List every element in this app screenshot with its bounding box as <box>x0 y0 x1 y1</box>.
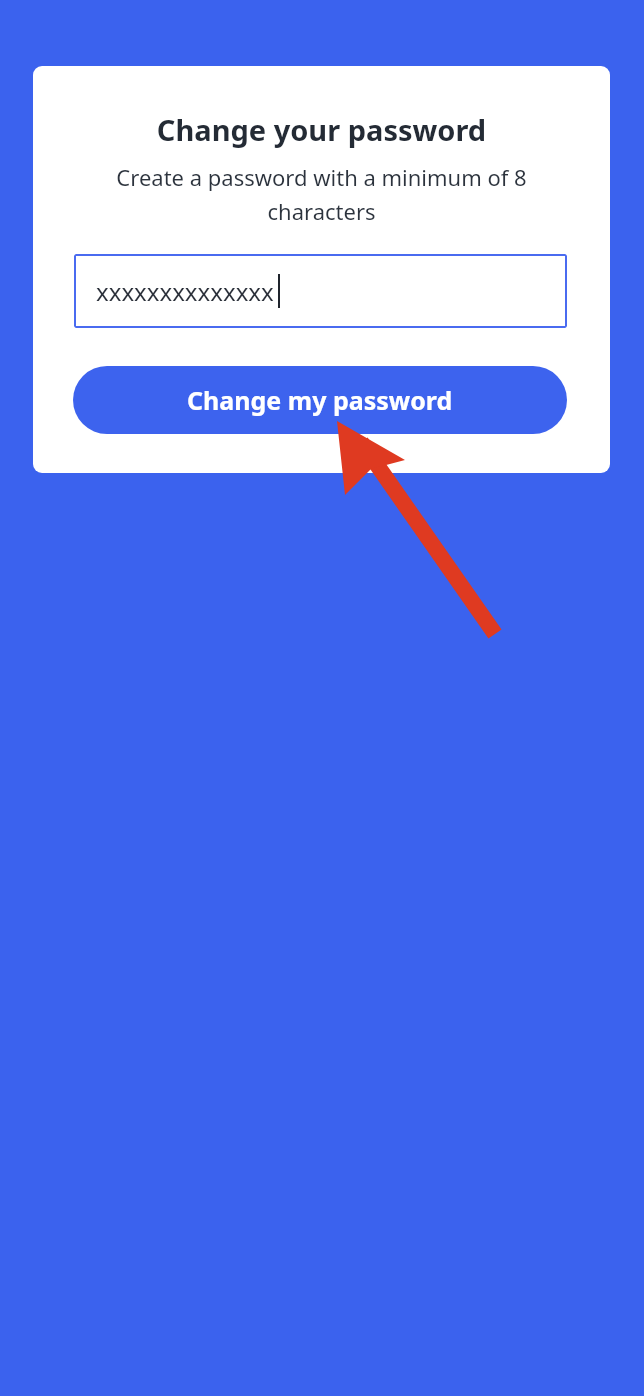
staticText: xxxxxxxxxxxxxx <box>96 275 274 308</box>
staticText: Create a password with a minimum of 8 ch… <box>87 162 556 226</box>
staticText: Change my password <box>187 383 453 417</box>
button[interactable]: Change my password <box>73 366 567 434</box>
other: Pointer annotation arrow <box>325 412 505 644</box>
button[interactable]: Password input field <box>74 254 567 328</box>
staticText: Change your password <box>53 110 590 149</box>
